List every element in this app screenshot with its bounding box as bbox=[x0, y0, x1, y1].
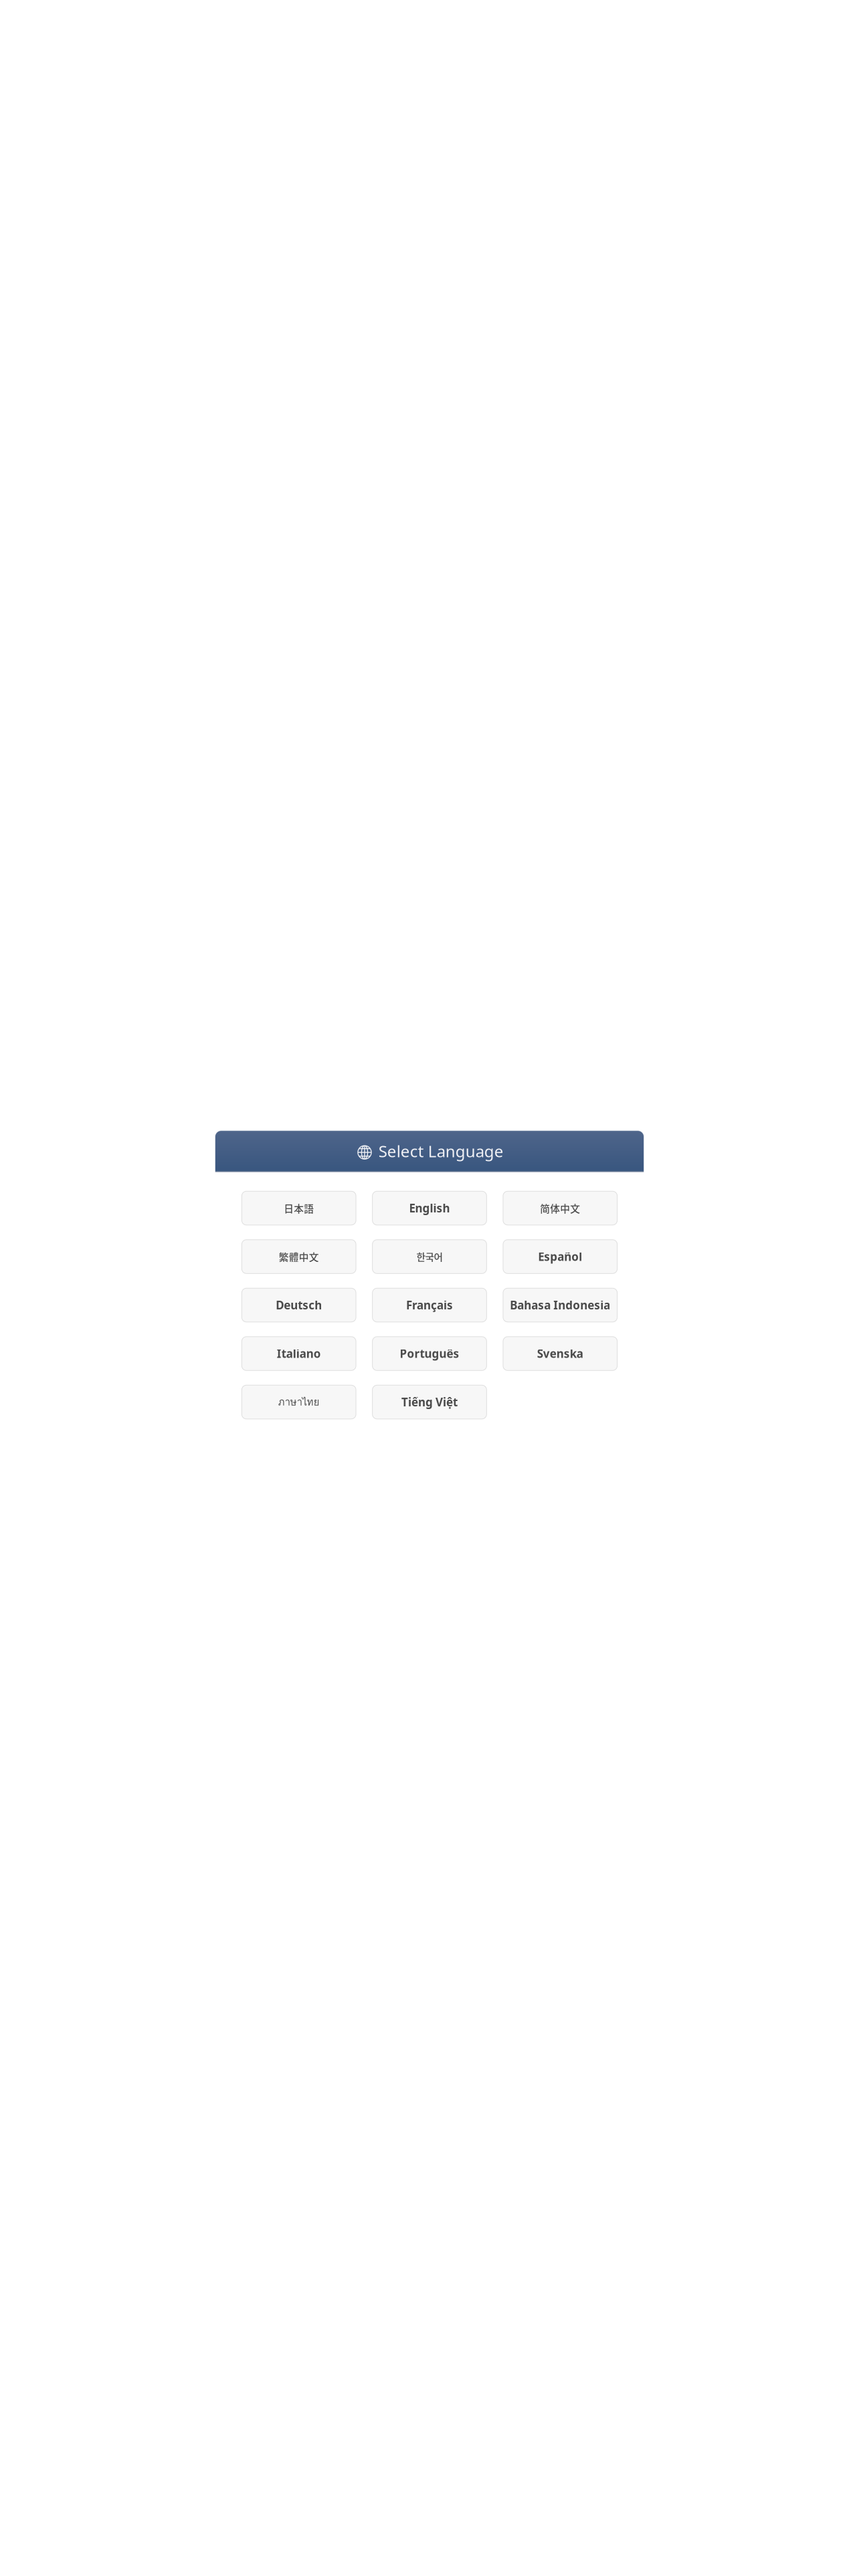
staticText: Español bbox=[538, 1249, 582, 1264]
staticText: English bbox=[409, 1200, 450, 1216]
button[interactable]: 繁體中文 bbox=[242, 1240, 356, 1273]
button[interactable]: Bahasa Indonesia bbox=[503, 1288, 617, 1322]
staticText: 繁體中文 bbox=[279, 1249, 319, 1264]
button[interactable]: Deutsch bbox=[242, 1288, 356, 1322]
staticText: 简体中文 bbox=[540, 1201, 580, 1215]
button[interactable]: 简体中文 bbox=[503, 1191, 617, 1225]
button[interactable]: Español bbox=[503, 1240, 617, 1273]
staticText: 한국어 bbox=[416, 1249, 443, 1264]
staticText: ภาษาไทย bbox=[278, 1394, 320, 1410]
button[interactable]: Français bbox=[372, 1288, 487, 1322]
button[interactable]: Português bbox=[372, 1337, 487, 1370]
staticText: Deutsch bbox=[276, 1297, 322, 1313]
staticText: Svenska bbox=[537, 1346, 583, 1361]
staticText: Português bbox=[400, 1346, 459, 1361]
staticText: Italiano bbox=[277, 1346, 321, 1361]
staticText: Tiếng Việt bbox=[401, 1394, 458, 1410]
button[interactable]: Svenska bbox=[503, 1337, 617, 1370]
button[interactable]: 한국어 bbox=[372, 1240, 487, 1273]
staticText: Bahasa Indonesia bbox=[510, 1297, 610, 1313]
button[interactable]: Italiano bbox=[242, 1337, 356, 1370]
staticText: Français bbox=[406, 1297, 453, 1313]
button[interactable]: Tiếng Việt bbox=[372, 1385, 487, 1419]
staticText: 日本語 bbox=[284, 1201, 314, 1215]
button[interactable]: English bbox=[372, 1191, 487, 1225]
button[interactable]: ภาษาไทย bbox=[242, 1385, 356, 1419]
button[interactable]: 日本語 bbox=[242, 1191, 356, 1225]
staticText: Select Language bbox=[379, 1140, 504, 1162]
